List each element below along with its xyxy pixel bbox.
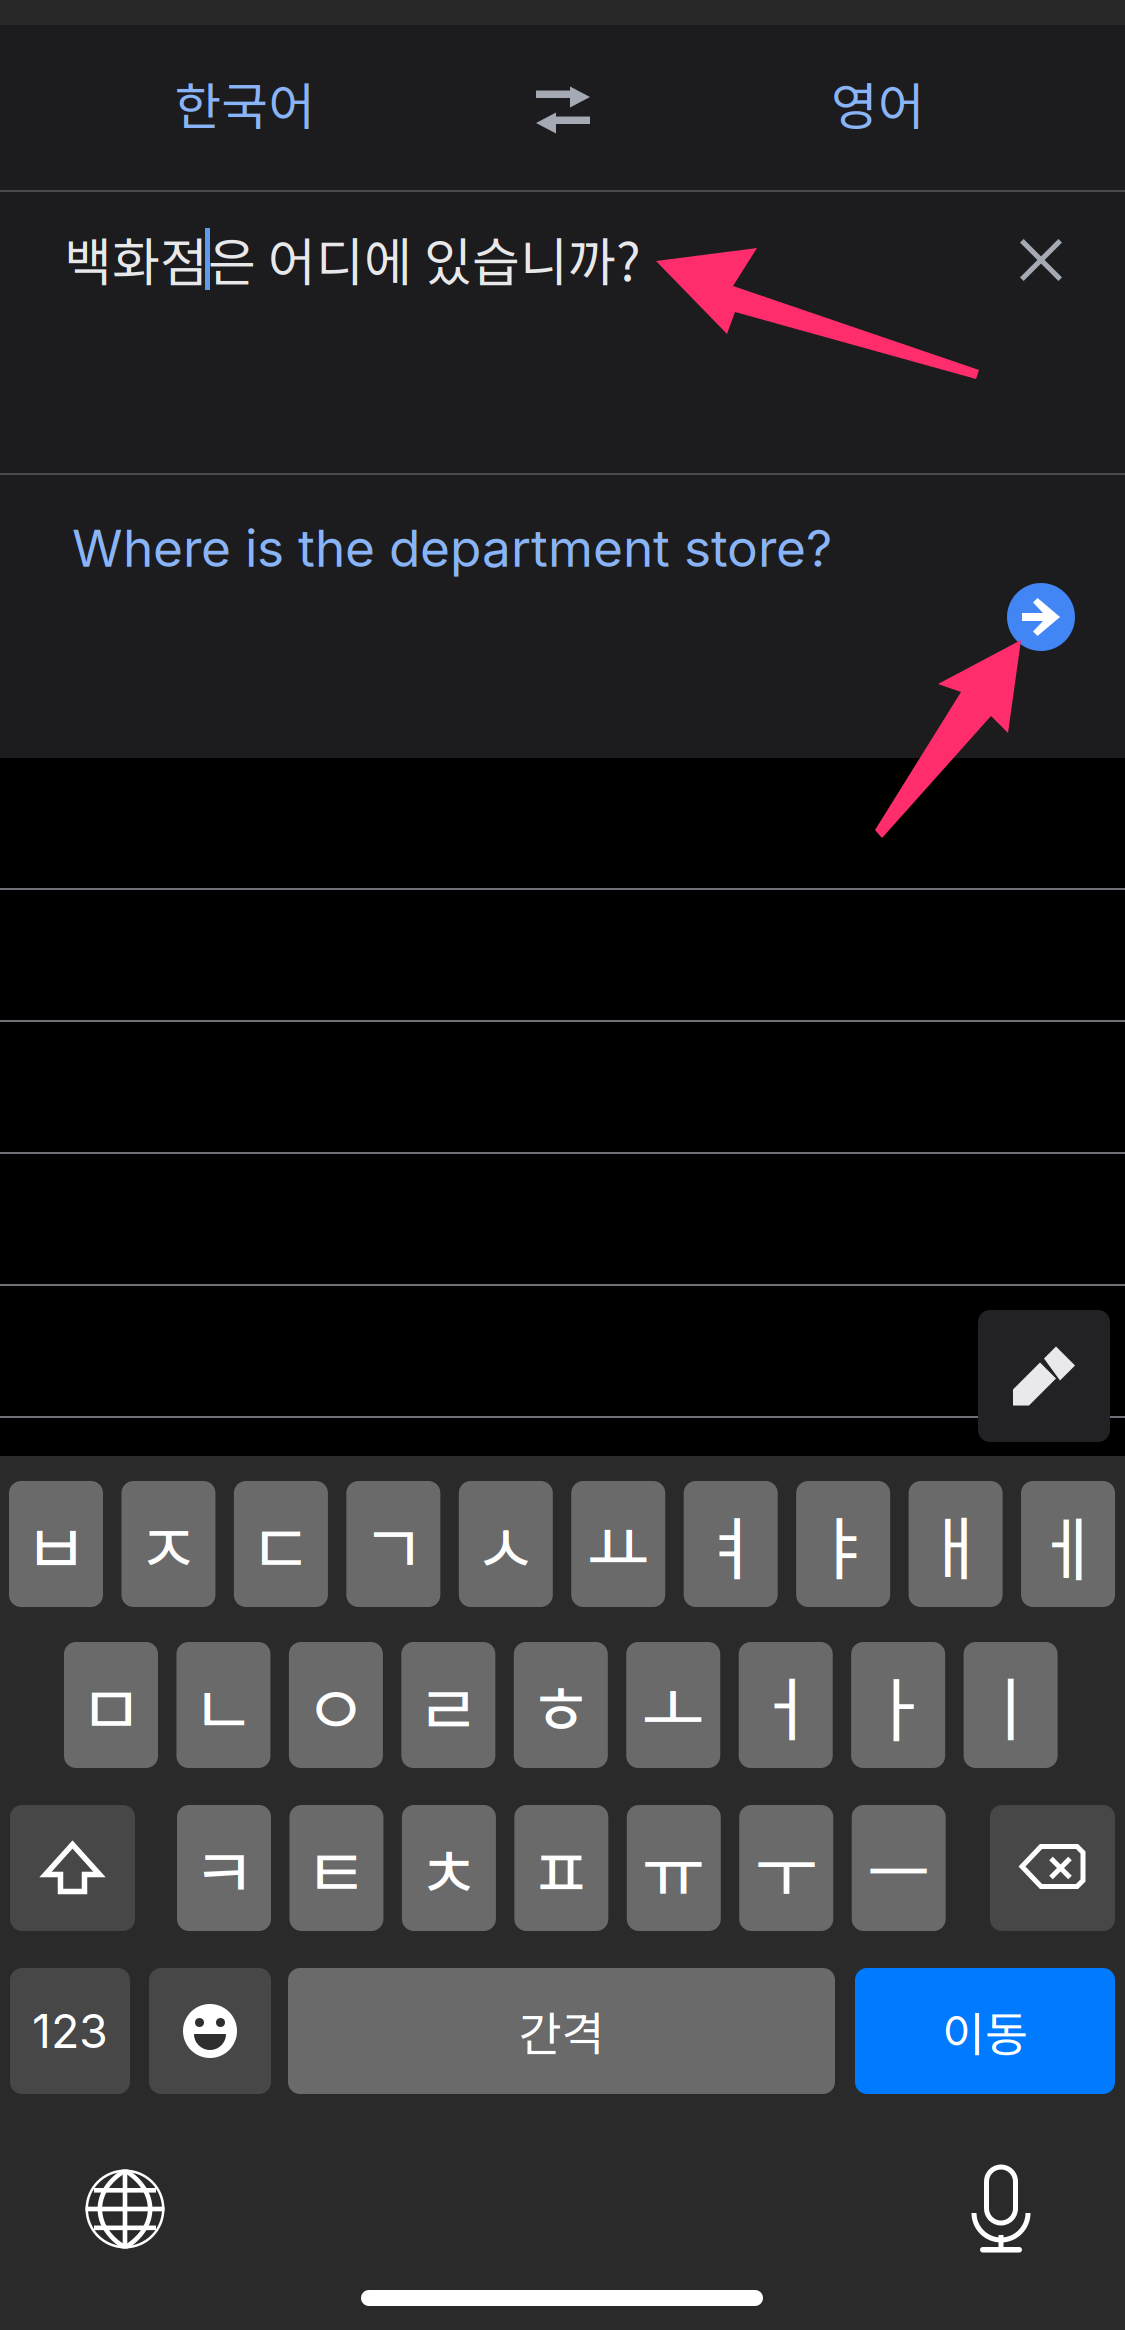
staticText: ㄱ	[361, 1494, 425, 1594]
staticText: ㅕ	[699, 1494, 763, 1594]
button[interactable]: ㅎ	[514, 1642, 608, 1768]
staticText: 백화점은 어디에 있습니까?	[64, 221, 641, 296]
staticText: ㅌ	[304, 1818, 368, 1918]
staticText: 123	[32, 2003, 108, 2059]
button[interactable]: Handwriting input	[978, 1310, 1110, 1442]
staticText: ㅇ	[304, 1655, 368, 1755]
button[interactable]: ㅂ	[9, 1481, 103, 1607]
button[interactable]: ㅋ	[177, 1805, 271, 1931]
button[interactable]: 123	[10, 1968, 130, 2094]
button[interactable]: ㅁ	[64, 1642, 158, 1768]
staticText: ㄴ	[191, 1655, 255, 1755]
staticText: ㅜ	[754, 1818, 818, 1918]
button[interactable]: 한국어	[75, 43, 415, 163]
button[interactable]: ㅣ	[964, 1642, 1058, 1768]
button[interactable]: ㄱ	[346, 1481, 440, 1607]
button[interactable]: ㅜ	[739, 1805, 833, 1931]
button[interactable]: ㅑ	[796, 1481, 890, 1607]
button[interactable]: ㅛ	[571, 1481, 665, 1607]
button[interactable]: ㅇ	[289, 1642, 383, 1768]
staticText: 이동	[942, 1997, 1028, 2065]
button[interactable]: ㅔ	[1021, 1481, 1115, 1607]
button[interactable]: ㅏ	[851, 1642, 945, 1768]
staticText: ㅅ	[474, 1494, 538, 1594]
button[interactable]: Swap languages	[488, 50, 638, 170]
staticText: ㅡ	[867, 1818, 931, 1918]
button[interactable]: ㅕ	[684, 1481, 778, 1607]
staticText: 간격	[518, 1997, 604, 2065]
staticText: ㅛ	[586, 1494, 650, 1594]
button[interactable]: Delete	[990, 1805, 1115, 1931]
staticText: ㅈ	[136, 1494, 200, 1594]
button[interactable]: Clear text	[993, 212, 1089, 308]
staticText: Where is the department store?	[72, 517, 832, 579]
staticText: ㅎ	[529, 1655, 593, 1755]
staticText: ㅔ	[1036, 1494, 1100, 1594]
button[interactable]: ㄹ	[401, 1642, 495, 1768]
button[interactable]: ㅊ	[402, 1805, 496, 1931]
button[interactable]: 간격	[288, 1968, 835, 2094]
button[interactable]: Open translation	[1007, 583, 1075, 651]
button[interactable]: Next keyboard	[70, 2154, 180, 2264]
button[interactable]: Dictation	[946, 2142, 1056, 2252]
button[interactable]: ㅈ	[121, 1481, 215, 1607]
staticText: ㅗ	[641, 1655, 705, 1755]
button[interactable]: 영어	[708, 43, 1048, 163]
staticText: ㄹ	[416, 1655, 480, 1755]
button[interactable]: ㅌ	[289, 1805, 383, 1931]
button[interactable]: ㄷ	[234, 1481, 328, 1607]
button[interactable]: ㄴ	[176, 1642, 270, 1768]
button[interactable]: ㅍ	[514, 1805, 608, 1931]
staticText: 영어	[831, 66, 925, 140]
staticText: ㅊ	[417, 1818, 481, 1918]
staticText: ㅋ	[192, 1818, 256, 1918]
staticText: ㅂ	[24, 1494, 88, 1594]
button[interactable]: Shift	[10, 1805, 135, 1931]
staticText: ㅣ	[979, 1655, 1043, 1755]
button[interactable]: ㅗ	[626, 1642, 720, 1768]
staticText: ㅑ	[811, 1494, 875, 1594]
button[interactable]: ㅓ	[739, 1642, 833, 1768]
button[interactable]: Emoji	[149, 1968, 271, 2094]
staticText: 한국어	[174, 66, 315, 140]
button[interactable]: ㅡ	[852, 1805, 946, 1931]
button[interactable]: 이동	[855, 1968, 1115, 2094]
button[interactable]: ㅅ	[459, 1481, 553, 1607]
button[interactable]: ㅠ	[627, 1805, 721, 1931]
staticText: ㅠ	[642, 1818, 706, 1918]
staticText: ㅁ	[79, 1655, 143, 1755]
staticText: ㅐ	[924, 1494, 988, 1594]
staticText: ㅍ	[529, 1818, 593, 1918]
staticText: ㅓ	[754, 1655, 818, 1755]
button[interactable]: ㅐ	[909, 1481, 1003, 1607]
staticText: ㄷ	[249, 1494, 313, 1594]
staticText: ㅏ	[866, 1655, 930, 1755]
